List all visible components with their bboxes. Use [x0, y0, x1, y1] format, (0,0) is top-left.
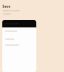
staticText: Save: [2, 5, 10, 9]
staticText: Scanned document: [4, 23, 18, 25]
staticText: documents: [2, 13, 11, 15]
staticText: Manage your scanned: [2, 10, 19, 12]
